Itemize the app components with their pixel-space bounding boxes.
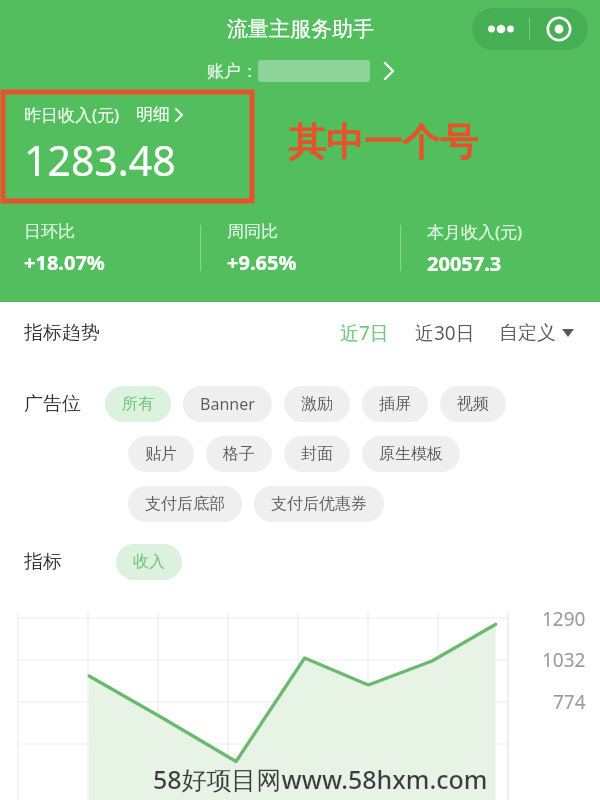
button[interactable]: 原生模板 <box>362 436 460 472</box>
staticText: 774 <box>553 689 586 715</box>
staticText: 本月收入(元) <box>427 220 523 243</box>
button[interactable]: 格子 <box>206 436 272 472</box>
button[interactable]: 封面 <box>284 436 350 472</box>
staticText: 视频 <box>457 394 489 414</box>
staticText: 周同比 <box>227 221 278 242</box>
staticText: 明细 <box>136 104 170 125</box>
staticText: 封面 <box>301 444 333 464</box>
staticText: 指标 <box>24 550 62 574</box>
button[interactable]: 昨日收入(元) <box>24 103 183 126</box>
button[interactable]: 支付后优惠券 <box>254 486 384 522</box>
staticText: +9.65% <box>227 249 297 276</box>
staticText: Banner <box>200 393 255 415</box>
staticText: 贴片 <box>145 444 177 464</box>
button[interactable]: 自定义 <box>497 315 576 351</box>
staticText: +18.07% <box>24 249 105 276</box>
staticText: 昨日收入(元) <box>24 103 120 126</box>
staticText: 激励 <box>301 394 333 414</box>
button[interactable]: Close <box>530 8 588 50</box>
button[interactable]: 激励 <box>284 386 350 422</box>
button[interactable]: 近30日 <box>411 314 479 352</box>
button[interactable]: 插屏 <box>362 386 428 422</box>
staticText: 广告位 <box>24 392 81 416</box>
staticText: 自定义 <box>499 321 556 345</box>
button[interactable]: 收入 <box>116 544 182 580</box>
staticText: 1283.48 <box>24 132 176 188</box>
staticText: 58好项目网www.58hxm.com <box>153 762 488 796</box>
button[interactable]: More options <box>472 8 529 50</box>
staticText: 流量主服务助手 <box>227 16 374 42</box>
staticText: 近7日 <box>340 320 389 346</box>
staticText: 支付后底部 <box>145 494 225 514</box>
staticText: 所有 <box>122 394 154 414</box>
staticText: 收入 <box>133 552 165 572</box>
button[interactable]: 近7日 <box>336 314 393 352</box>
staticText: 原生模板 <box>379 444 443 464</box>
staticText: 支付后优惠券 <box>271 494 367 514</box>
button[interactable]: 贴片 <box>128 436 194 472</box>
staticText: 1032 <box>542 647 586 673</box>
button[interactable]: 支付后底部 <box>128 486 242 522</box>
staticText: 其中一个号 <box>288 118 478 166</box>
staticText: 近30日 <box>415 320 475 346</box>
button[interactable]: Banner <box>183 386 272 422</box>
staticText: 20057.3 <box>427 250 502 277</box>
staticText: 账户： <box>207 61 258 82</box>
button[interactable]: 账户： <box>207 60 394 82</box>
staticText: 插屏 <box>379 394 411 414</box>
staticText: 指标趋势 <box>24 321 100 345</box>
button[interactable]: 视频 <box>440 386 506 422</box>
staticText: 1290 <box>542 606 586 632</box>
staticText: 格子 <box>223 444 255 464</box>
button[interactable]: 所有 <box>105 386 171 422</box>
staticText: 日环比 <box>24 221 75 242</box>
